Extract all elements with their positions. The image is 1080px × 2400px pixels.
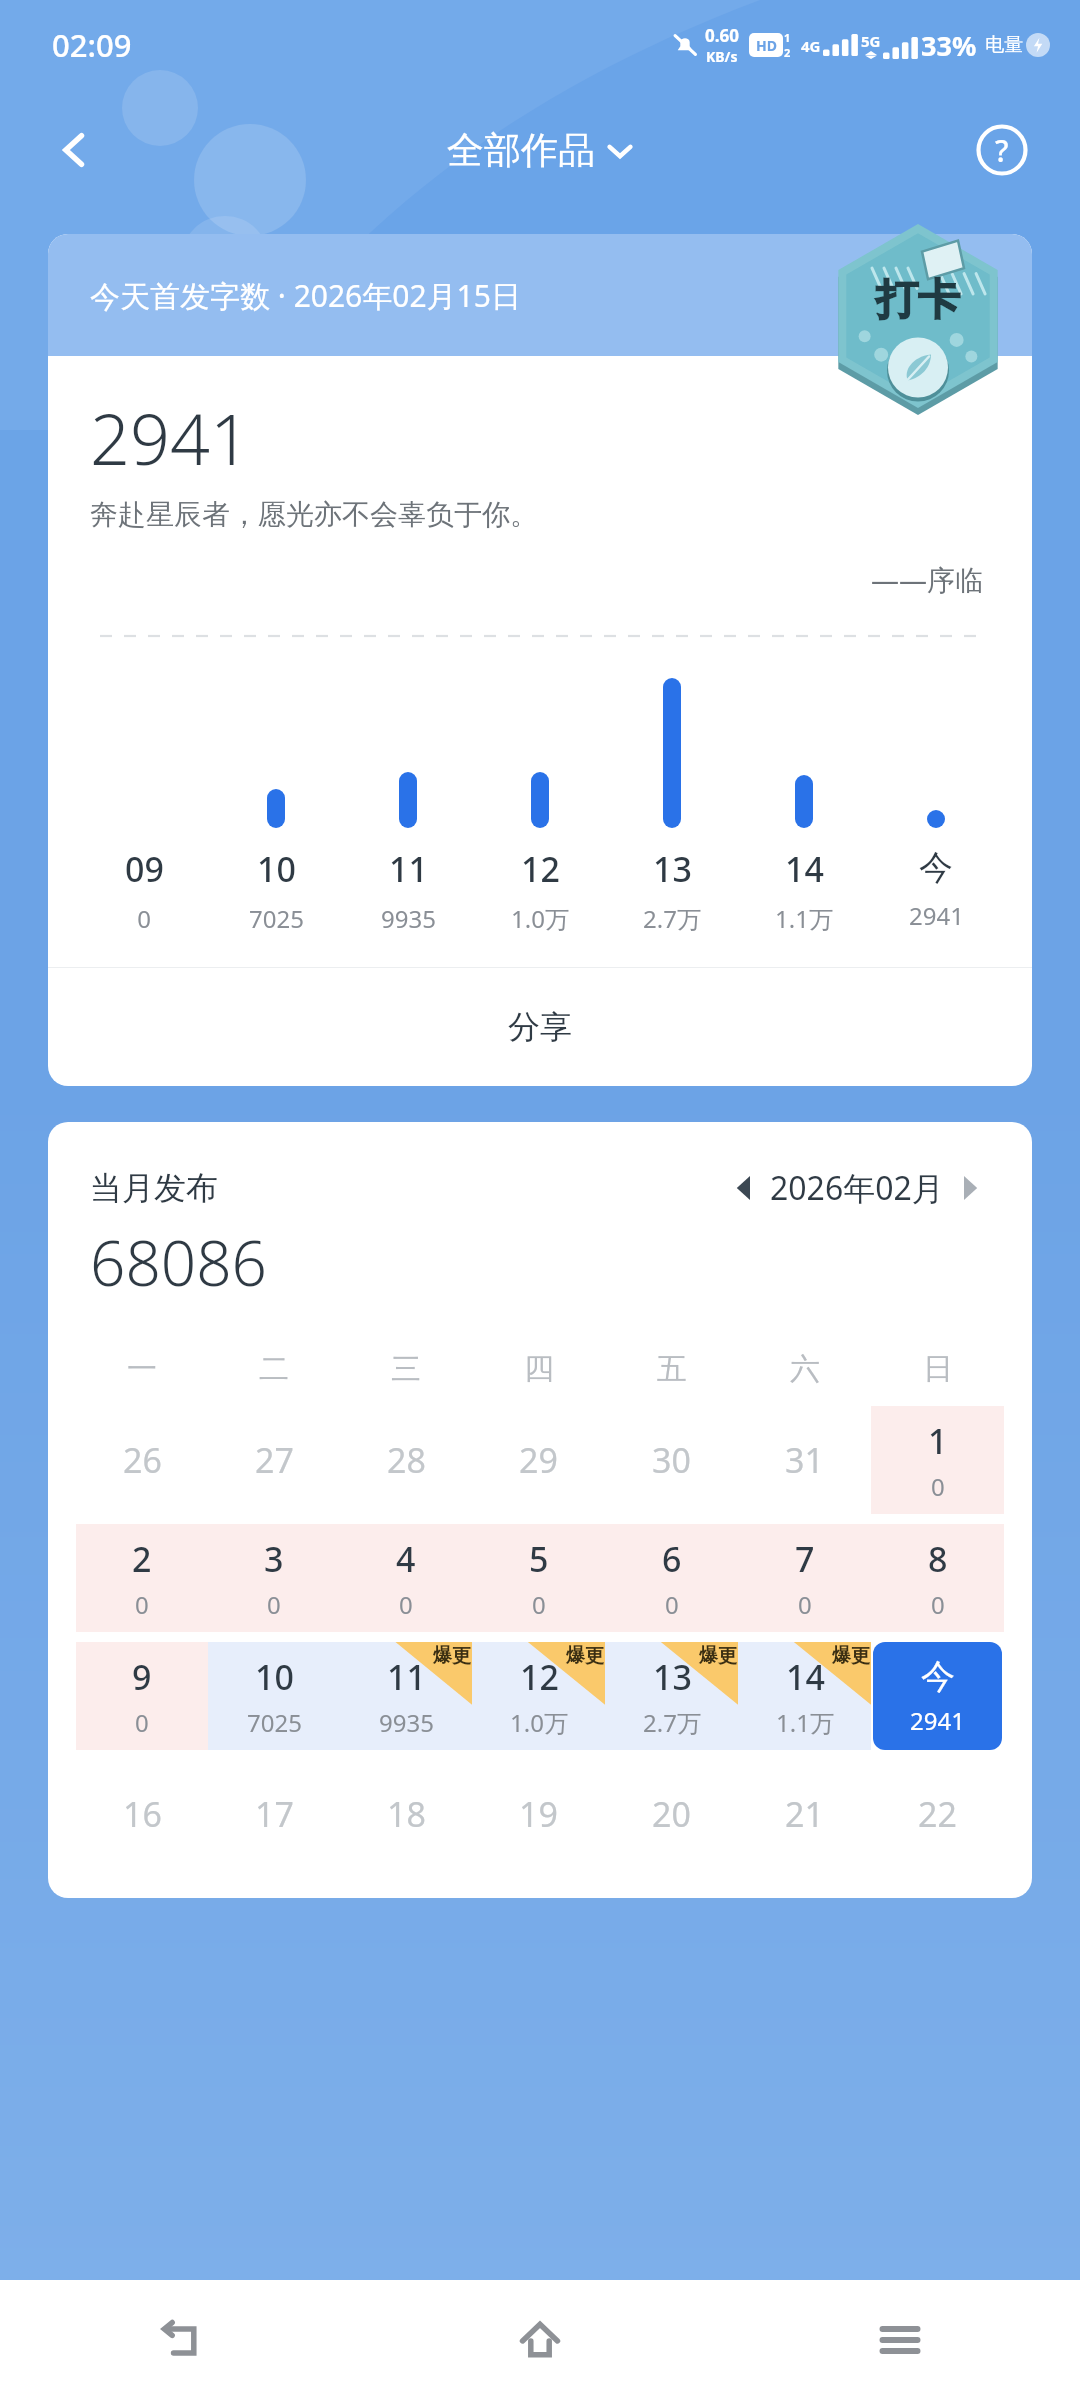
button[interactable]: 全部作品 bbox=[447, 127, 633, 174]
staticText: 1 bbox=[784, 30, 791, 45]
staticText: 5G bbox=[861, 31, 881, 51]
staticText: 27 bbox=[255, 1437, 294, 1483]
staticText: 爆更 bbox=[699, 1644, 737, 1668]
staticText: 2 bbox=[132, 1536, 152, 1582]
staticText: 爆更 bbox=[566, 1644, 604, 1668]
button[interactable]: 28 bbox=[340, 1406, 472, 1514]
button[interactable]: Help bbox=[966, 114, 1038, 186]
button[interactable]: Back bbox=[0, 2280, 360, 2400]
button[interactable]: 29 bbox=[472, 1406, 605, 1514]
staticText: 六 bbox=[790, 1350, 820, 1388]
button[interactable]: 26 bbox=[76, 1406, 208, 1514]
staticText: 14 bbox=[786, 1654, 825, 1700]
staticText: 0 bbox=[931, 1588, 945, 1621]
button[interactable]: 1 bbox=[871, 1406, 1004, 1514]
staticText: 0 bbox=[665, 1588, 679, 1621]
staticText: 26 bbox=[123, 1437, 162, 1483]
staticText: ——序临 bbox=[871, 560, 984, 598]
staticText: 09 bbox=[125, 846, 164, 892]
button[interactable]: 爆更 bbox=[472, 1642, 605, 1750]
staticText: 29 bbox=[519, 1437, 558, 1483]
staticText: 2941 bbox=[90, 390, 250, 485]
button[interactable]: 今 bbox=[871, 1642, 1004, 1750]
button[interactable]: Home bbox=[360, 2280, 720, 2400]
staticText: 13 bbox=[653, 846, 692, 892]
button[interactable]: 8 bbox=[871, 1524, 1004, 1632]
button[interactable]: 5 bbox=[472, 1524, 605, 1632]
staticText: 9 bbox=[132, 1654, 152, 1700]
staticText: 14 bbox=[785, 846, 824, 892]
button[interactable]: 10 bbox=[208, 1642, 340, 1750]
staticText: 打卡 bbox=[876, 274, 960, 327]
staticText: 0 bbox=[399, 1588, 413, 1621]
staticText: 1.1万 bbox=[776, 1706, 834, 1739]
staticText: 0.60 bbox=[705, 24, 739, 47]
staticText: 18 bbox=[387, 1791, 426, 1837]
staticText: 2941 bbox=[910, 1704, 965, 1737]
staticText: 12 bbox=[521, 846, 560, 892]
staticText: 13 bbox=[653, 1654, 692, 1700]
staticText: 68086 bbox=[90, 1220, 268, 1304]
staticText: 0 bbox=[137, 902, 151, 935]
staticText: 20 bbox=[652, 1791, 691, 1837]
button[interactable]: 21 bbox=[738, 1760, 871, 1868]
staticText: 全部作品 bbox=[447, 127, 595, 174]
staticText: 9935 bbox=[381, 902, 436, 935]
staticText: 9935 bbox=[379, 1706, 434, 1739]
button[interactable]: 4 bbox=[340, 1524, 472, 1632]
staticText: 5 bbox=[529, 1536, 549, 1582]
button[interactable]: 27 bbox=[208, 1406, 340, 1514]
staticText: 17 bbox=[255, 1791, 294, 1837]
button[interactable]: 30 bbox=[605, 1406, 738, 1514]
button[interactable]: 17 bbox=[208, 1760, 340, 1868]
button[interactable]: 19 bbox=[472, 1760, 605, 1868]
staticText: 四 bbox=[524, 1350, 554, 1388]
staticText: 二 bbox=[259, 1350, 289, 1388]
staticText: 22 bbox=[918, 1791, 957, 1837]
button[interactable]: Next month bbox=[944, 1162, 996, 1214]
button[interactable]: 16 bbox=[76, 1760, 208, 1868]
staticText: 4 bbox=[396, 1536, 416, 1582]
button[interactable]: 打卡 bbox=[818, 216, 1018, 416]
button[interactable]: 20 bbox=[605, 1760, 738, 1868]
staticText: 2.7万 bbox=[643, 1706, 701, 1739]
staticText: KB/s bbox=[706, 47, 738, 66]
button[interactable]: 6 bbox=[605, 1524, 738, 1632]
staticText: 1.1万 bbox=[775, 902, 833, 935]
staticText: 今 bbox=[919, 846, 953, 889]
button[interactable]: Menu bbox=[720, 2280, 1080, 2400]
button[interactable]: 9 bbox=[76, 1642, 208, 1750]
staticText: 28 bbox=[387, 1437, 426, 1483]
staticText: 2026年02月 bbox=[770, 1166, 944, 1210]
button[interactable]: Back bbox=[40, 116, 108, 184]
staticText: 11 bbox=[387, 1654, 426, 1700]
staticText: 2 bbox=[784, 45, 791, 60]
staticText: 2.7万 bbox=[643, 902, 701, 935]
button[interactable]: 分享 bbox=[48, 968, 1032, 1086]
button[interactable]: 31 bbox=[738, 1406, 871, 1514]
staticText: 0 bbox=[267, 1588, 281, 1621]
staticText: 16 bbox=[123, 1791, 162, 1837]
staticText: 21 bbox=[785, 1791, 824, 1837]
staticText: 0 bbox=[532, 1588, 546, 1621]
staticText: 6 bbox=[662, 1536, 682, 1582]
staticText: 1.0万 bbox=[510, 1706, 568, 1739]
staticText: 0 bbox=[135, 1588, 149, 1621]
button[interactable]: 3 bbox=[208, 1524, 340, 1632]
button[interactable]: 爆更 bbox=[605, 1642, 738, 1750]
staticText: 今天首发字数 · 2026年02月15日 bbox=[90, 275, 521, 316]
button[interactable]: 爆更 bbox=[738, 1642, 871, 1750]
button[interactable]: 2 bbox=[76, 1524, 208, 1632]
button[interactable]: 7 bbox=[738, 1524, 871, 1632]
staticText: 11 bbox=[389, 846, 428, 892]
staticText: 33% bbox=[921, 27, 977, 64]
button[interactable]: 18 bbox=[340, 1760, 472, 1868]
staticText: 10 bbox=[257, 846, 296, 892]
button[interactable]: Previous month bbox=[718, 1162, 770, 1214]
staticText: 当月发布 bbox=[90, 1168, 218, 1208]
staticText: 4G bbox=[801, 36, 821, 56]
button[interactable]: 爆更 bbox=[340, 1642, 472, 1750]
staticText: 1.0万 bbox=[511, 902, 569, 935]
button[interactable]: 22 bbox=[871, 1760, 1004, 1868]
staticText: 7025 bbox=[247, 1706, 302, 1739]
